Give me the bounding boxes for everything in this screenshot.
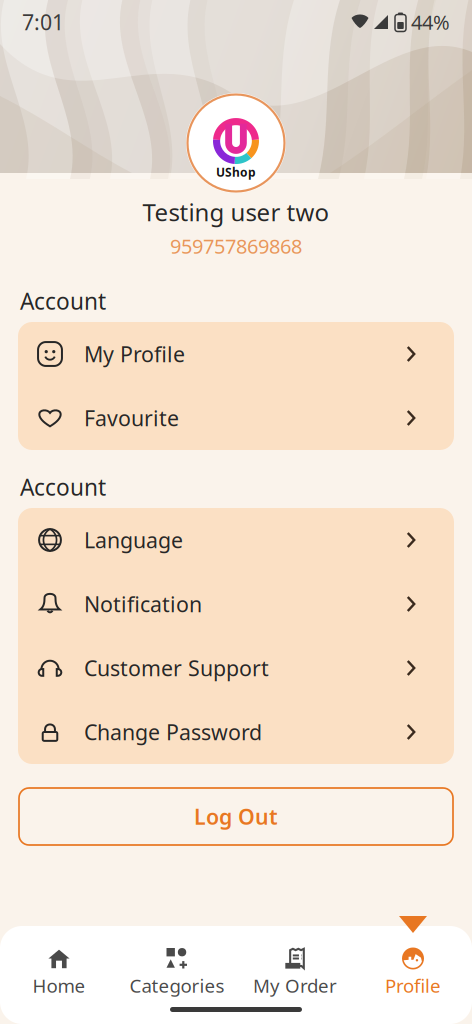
staticText: 44% <box>411 9 450 35</box>
button[interactable]: Favourite <box>18 386 454 450</box>
staticText: Customer Support <box>84 654 269 682</box>
button[interactable]: Notification <box>18 572 454 636</box>
staticText: 7:01 <box>22 8 64 36</box>
staticText: Account <box>20 286 106 316</box>
button[interactable]: Language <box>18 508 454 572</box>
staticText: Categories <box>129 973 224 998</box>
staticText: Favourite <box>84 404 179 432</box>
staticText: Language <box>84 526 183 554</box>
button[interactable]: Categories <box>118 945 236 997</box>
button[interactable]: Customer Support <box>18 636 454 700</box>
button[interactable]: Home <box>0 945 118 997</box>
button[interactable]: Profile <box>354 945 472 997</box>
button[interactable]: Profile photo <box>186 93 286 193</box>
staticText: Notification <box>84 590 202 618</box>
staticText: Testing user two <box>142 196 329 228</box>
staticText: My Order <box>253 973 337 998</box>
staticText: 959757869868 <box>170 233 302 259</box>
button[interactable]: My Profile <box>18 322 454 386</box>
staticText: Account <box>20 472 106 502</box>
staticText: My Profile <box>84 340 185 368</box>
staticText: Home <box>32 973 85 998</box>
button[interactable]: Change Password <box>18 700 454 764</box>
staticText: Change Password <box>84 718 262 746</box>
staticText: Profile <box>385 973 441 998</box>
staticText: Log Out <box>194 802 278 831</box>
staticText: UShop <box>216 164 256 180</box>
button[interactable]: Log Out <box>19 788 453 845</box>
button[interactable]: My Order <box>236 945 354 997</box>
